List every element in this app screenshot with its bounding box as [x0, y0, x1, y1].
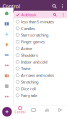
button[interactable]: More options [59, 0, 66, 12]
button[interactable]: Search [50, 0, 59, 12]
staticText: Control [15, 110, 26, 114]
button[interactable]: Control [13, 105, 27, 119]
staticText: Indoor and cold [21, 59, 47, 64]
button[interactable]: Stretching [14, 79, 67, 85]
button[interactable]: Category [0, 91, 13, 102]
button[interactable]: Twist [14, 65, 67, 72]
staticText: Candles [21, 26, 35, 31]
button[interactable]: Category [0, 71, 13, 81]
button[interactable]: Add [2, 107, 12, 117]
button[interactable]: Add task [14, 11, 67, 18]
button[interactable]: Finger games [14, 38, 67, 45]
button[interactable]: Active [14, 45, 67, 52]
button[interactable]: Category [0, 60, 13, 71]
staticText: Active [21, 46, 32, 51]
button[interactable]: Category [0, 50, 13, 60]
staticText: Shoulders [21, 52, 38, 58]
button[interactable]: Tab [54, 105, 67, 119]
button[interactable]: less than 5 minutes [14, 18, 67, 25]
staticText: Twist [21, 66, 30, 71]
button[interactable]: Fairy tale [14, 92, 67, 99]
staticText: Start scratching [21, 32, 48, 38]
button[interactable]: Indoor and cold [14, 58, 67, 65]
staticText: Stretching [21, 79, 38, 85]
staticText: Add task [21, 12, 36, 17]
button[interactable]: Arrows and scales [14, 72, 67, 79]
staticText: Arrows and scales [21, 73, 54, 78]
button[interactable]: Start scratching [14, 32, 67, 38]
staticText: Dice roll [21, 86, 36, 91]
button[interactable]: Category [0, 19, 13, 29]
staticText: Finger games [21, 39, 45, 44]
button[interactable]: Dice roll [14, 85, 67, 92]
staticText: Control [2, 3, 19, 10]
staticText: less than 5 minutes [21, 19, 54, 24]
button[interactable]: Category [0, 8, 13, 19]
button[interactable]: Category [0, 39, 13, 50]
staticText: Fairy tale [21, 93, 37, 98]
button[interactable]: Category [0, 81, 13, 91]
button[interactable]: Shoulders [14, 52, 67, 58]
button[interactable]: Tab [27, 105, 40, 119]
button[interactable]: Candles [14, 25, 67, 32]
button[interactable]: Tab [40, 105, 54, 119]
button[interactable]: Category [0, 29, 13, 39]
